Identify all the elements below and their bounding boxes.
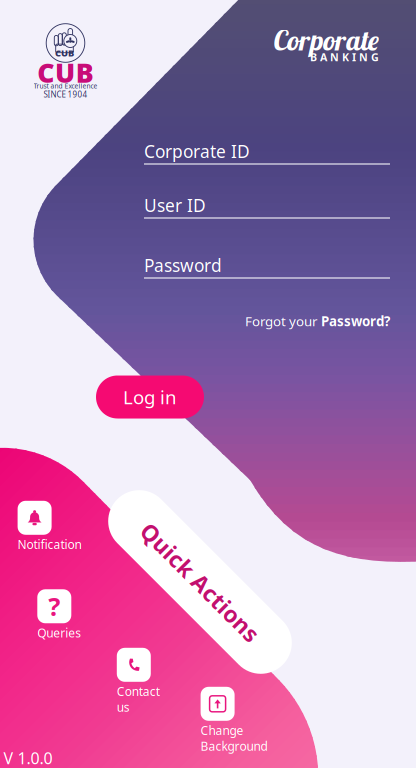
button[interactable]: Forgot your (144, 312, 390, 330)
button[interactable]: Corporate ID (144, 139, 390, 165)
staticText: V 1.0.0 (3, 747, 52, 768)
button[interactable]: ? (37, 589, 97, 641)
button[interactable]: User ID (144, 193, 390, 219)
staticText: Quick Actions (121, 567, 278, 597)
staticText: CUB (55, 47, 74, 59)
staticText: Contact us (117, 683, 160, 715)
staticText: Queries (37, 625, 81, 641)
staticText: Forgot your (245, 312, 321, 330)
staticText: Corporate ID (144, 140, 250, 163)
staticText: User ID (144, 194, 206, 217)
staticText: Corporate (273, 22, 379, 57)
staticText: Trust and Excellence (33, 82, 97, 90)
button[interactable]: Password (144, 253, 390, 279)
button[interactable]: Change Background (201, 687, 291, 754)
staticText: Notification (18, 536, 82, 552)
staticText: Log in (123, 385, 177, 409)
button[interactable]: Contact us (117, 648, 189, 715)
staticText: ? (48, 589, 60, 623)
staticText: Change Background (201, 722, 268, 754)
staticText: Password? (321, 312, 390, 330)
button[interactable]: Notification (18, 501, 98, 552)
staticText: SINCE 1904 (43, 89, 87, 100)
staticText: Password (144, 254, 222, 277)
button[interactable]: Log in (96, 375, 204, 418)
staticText: B A N K I N G (310, 50, 379, 64)
staticText: CUB (37, 55, 94, 90)
